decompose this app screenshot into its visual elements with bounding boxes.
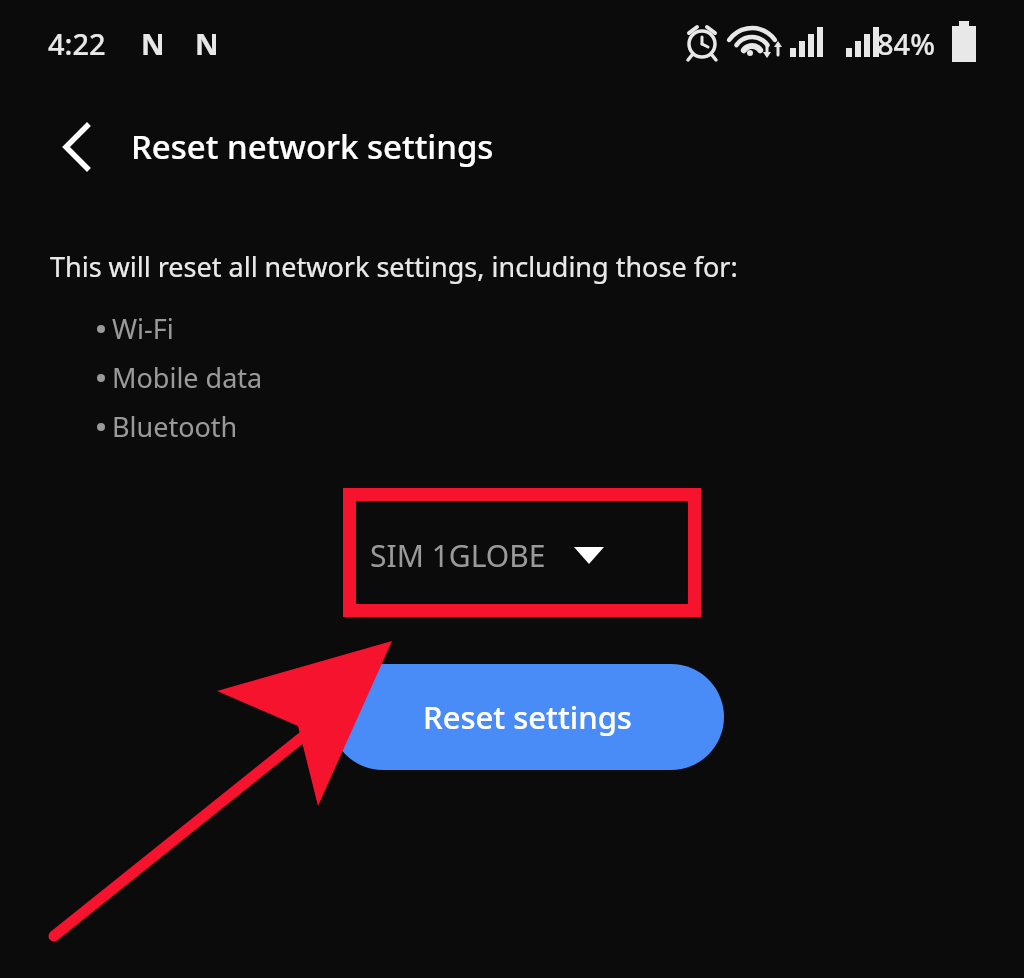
button[interactable]: Back xyxy=(40,110,104,184)
button[interactable]: Reset settings xyxy=(330,664,724,770)
staticText: This will reset all network settings, in… xyxy=(50,248,738,285)
button[interactable]: SIM 1GLOBE xyxy=(370,524,606,586)
staticText: N xyxy=(141,24,165,63)
staticText: Mobile data xyxy=(112,359,263,396)
staticText: 84% xyxy=(877,24,935,63)
staticText: N xyxy=(195,24,219,63)
staticText: 4:22 xyxy=(48,24,106,63)
staticText: Wi-Fi xyxy=(112,310,174,347)
staticText: SIM 1GLOBE xyxy=(370,535,546,576)
staticText: Reset network settings xyxy=(131,124,494,169)
staticText: Reset settings xyxy=(423,696,632,738)
staticText: Bluetooth xyxy=(112,408,238,445)
